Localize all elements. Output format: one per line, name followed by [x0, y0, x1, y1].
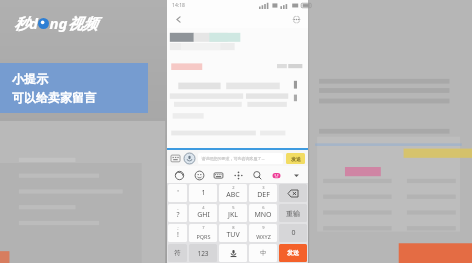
staticText: 请说明您的要求，可先咨询客服了... — [201, 156, 265, 161]
staticText: 9 — [262, 225, 265, 230]
button[interactable]: Voice input — [219, 244, 247, 262]
button[interactable]: ; — [168, 224, 187, 242]
button[interactable]: ' — [168, 184, 187, 202]
button[interactable]: 发送 — [279, 244, 307, 262]
button[interactable]: , — [168, 204, 187, 222]
button[interactable]: Keyboard layout — [211, 168, 225, 182]
button[interactable]: 4 — [189, 204, 217, 222]
button[interactable]: Collapse — [289, 168, 303, 182]
button[interactable]: 1 — [189, 184, 217, 202]
button[interactable]: Stickers — [269, 168, 283, 182]
button[interactable]: 123 — [189, 244, 217, 262]
staticText: 发送 — [291, 156, 301, 162]
staticText: ? — [176, 210, 180, 220]
button[interactable]: Back — [172, 13, 185, 26]
staticText: 6 — [262, 205, 265, 210]
staticText: 重输 — [286, 209, 300, 218]
button[interactable]: More — [290, 13, 303, 26]
button[interactable]: Search — [250, 168, 264, 182]
staticText: DEF — [257, 190, 270, 200]
staticText: ' — [177, 188, 179, 198]
staticText: 符 — [174, 249, 181, 257]
button[interactable]: 8 — [219, 224, 247, 242]
button[interactable]: 3 — [249, 184, 277, 202]
staticText: TUV — [226, 230, 240, 240]
button[interactable]: 6 — [249, 204, 277, 222]
button[interactable]: Sogou — [172, 168, 186, 182]
staticText: 0 — [291, 228, 296, 238]
staticText: 3 — [262, 185, 265, 190]
staticText: 2 — [232, 185, 235, 190]
staticText: 小提示 — [12, 71, 48, 86]
staticText: JKL — [228, 210, 238, 220]
staticText: 中 — [260, 249, 267, 257]
button[interactable]: Emoji — [192, 168, 206, 182]
button[interactable]: 符 — [168, 244, 187, 262]
staticText: PQRS — [196, 233, 211, 240]
staticText: ABC — [226, 190, 240, 200]
staticText: GHI — [197, 210, 210, 220]
staticText: 123 — [197, 249, 209, 258]
button[interactable]: 重输 — [279, 204, 307, 222]
button[interactable] — [279, 184, 307, 202]
staticText: 1 — [201, 188, 206, 198]
staticText: 可以给卖家留言 — [12, 90, 96, 105]
button[interactable]: 中 — [249, 244, 277, 262]
staticText: 4 — [202, 205, 205, 210]
button[interactable]: Keyboard — [170, 153, 181, 164]
button[interactable]: 2 — [219, 184, 247, 202]
button[interactable]: 发送 — [286, 153, 305, 164]
staticText: 8 — [232, 225, 235, 230]
button[interactable]: 请说明您的要求，可先咨询客服了... — [198, 153, 283, 164]
staticText: 14:18 — [172, 2, 185, 9]
button[interactable]: Voice — [183, 152, 195, 164]
button[interactable]: 5 — [219, 204, 247, 222]
staticText: ! — [177, 230, 179, 240]
button[interactable]: 0 — [279, 224, 307, 242]
staticText: 5 — [232, 205, 235, 210]
staticText: WXYZ — [256, 233, 271, 240]
staticText: 秒d — [14, 13, 38, 33]
staticText: ng视频 — [49, 13, 98, 33]
staticText: ; — [177, 225, 179, 230]
button[interactable]: 9 — [249, 224, 277, 242]
staticText: 发送 — [287, 249, 299, 257]
staticText: , — [177, 205, 179, 210]
staticText: MNO — [254, 210, 272, 220]
staticText: 7 — [202, 225, 205, 230]
button[interactable]: Move cursor — [231, 168, 245, 182]
button[interactable]: 7 — [189, 224, 217, 242]
